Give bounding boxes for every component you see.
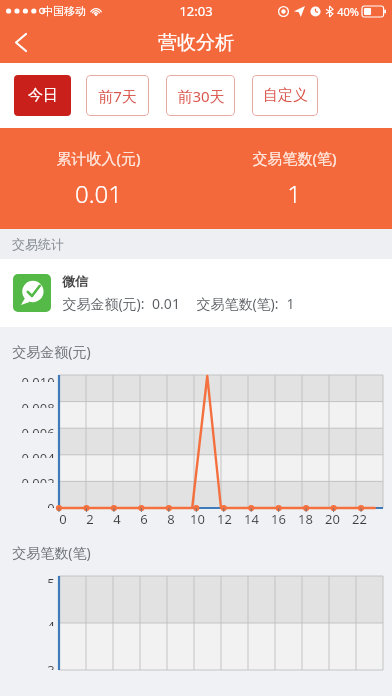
staticText: 4 (113, 510, 121, 528)
button[interactable]: 今日 (14, 75, 71, 116)
staticText: 营收分析 (158, 31, 234, 55)
staticText: 0.004 (21, 449, 55, 458)
staticText: 前7天 (98, 86, 137, 106)
staticText: 累计收入(元) (56, 148, 141, 168)
staticText: 交易金额(元): (62, 294, 145, 313)
button[interactable]: 自定义 (252, 75, 318, 116)
staticText: 2 (86, 510, 94, 528)
button[interactable]: 前7天 (86, 75, 149, 116)
staticText: 交易笔数(笔): (196, 294, 279, 313)
staticText: 自定义 (263, 86, 308, 105)
staticText: 20 (325, 510, 340, 528)
staticText: 40% (337, 4, 359, 19)
staticText: 1 (286, 294, 295, 313)
staticText: 0.002 (21, 474, 55, 483)
staticText: 前30天 (177, 86, 225, 106)
staticText: 0.008 (21, 399, 55, 408)
staticText: 0.01 (75, 177, 122, 210)
staticText: 交易笔数(笔) (252, 148, 337, 168)
staticText: 3 (47, 661, 55, 670)
staticText: 0.006 (21, 424, 55, 433)
staticText: 0.01 (152, 294, 180, 313)
staticText: 今日 (28, 86, 58, 105)
button[interactable]: 前30天 (166, 75, 235, 116)
button[interactable]: Back (0, 22, 42, 63)
staticText: 14 (244, 510, 259, 528)
staticText: 8 (167, 510, 175, 528)
staticText: 微信 (62, 273, 88, 289)
staticText: 16 (271, 510, 286, 528)
staticText: 5 (47, 574, 55, 583)
staticText: 4 (47, 617, 55, 626)
staticText: 6 (140, 510, 148, 528)
staticText: 交易笔数(笔) (12, 543, 91, 562)
staticText: 18 (298, 510, 313, 528)
button[interactable]: 微信 (0, 259, 392, 327)
staticText: 0 (47, 499, 55, 508)
staticText: 0.010 (21, 373, 55, 382)
staticText: 交易统计 (12, 236, 64, 252)
staticText: 0 (59, 510, 67, 528)
staticText: 22 (352, 510, 367, 528)
staticText: 交易金额(元) (12, 342, 91, 361)
staticText: 12 (217, 510, 232, 528)
staticText: 中国移动 (42, 4, 86, 18)
staticText: 10 (190, 510, 205, 528)
staticText: 1 (287, 177, 301, 210)
staticText: 12:03 (179, 2, 213, 20)
